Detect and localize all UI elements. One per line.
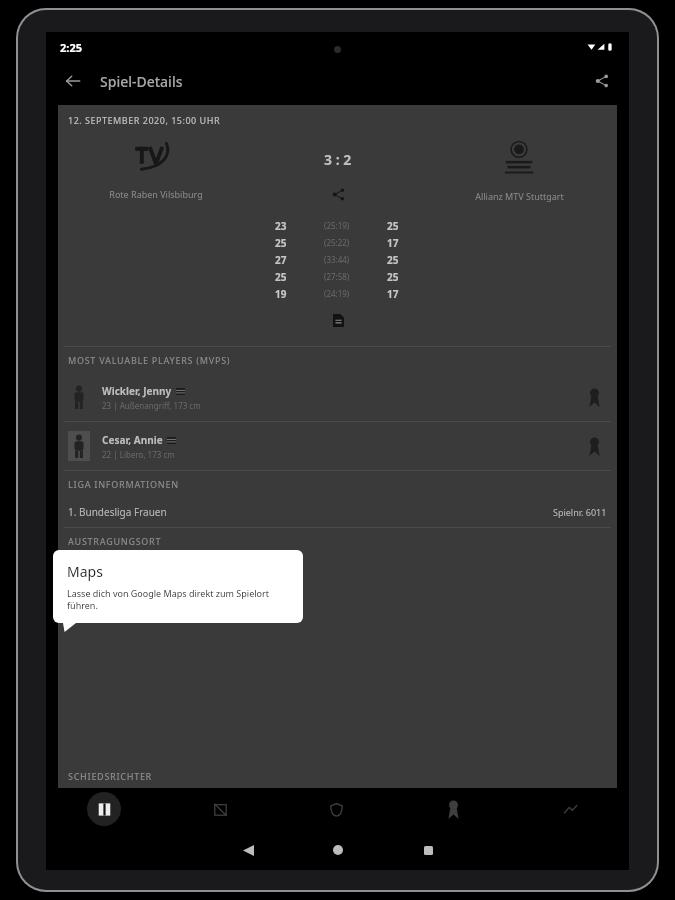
staticText: 25 (387, 219, 399, 233)
staticText: (25:19) (324, 220, 350, 231)
button[interactable]: Mehrzweckhalle Vilsbiburg (58, 554, 617, 594)
staticText: Rote Raben Vilsbiburg (109, 188, 203, 200)
staticText: SCHIEDSRICHTER (68, 770, 153, 782)
button[interactable]: Ranglisten (395, 788, 512, 830)
button[interactable]: Share (585, 64, 619, 98)
button[interactable]: Match report (326, 308, 350, 332)
staticText: 23 (275, 219, 287, 233)
button[interactable]: Home (310, 830, 366, 870)
staticText: 25 (275, 270, 287, 284)
staticText: (27:58) (324, 271, 350, 282)
staticText: AUSTRAGUNGSORT (68, 535, 162, 547)
button[interactable]: Kalender (162, 788, 278, 830)
staticText: 23 | Außenangriff, 173 cm (102, 400, 201, 411)
staticText: 25 (275, 236, 287, 250)
button[interactable]: Maps (53, 550, 303, 623)
button[interactable]: Back (220, 830, 276, 870)
staticText: (25:22) (324, 237, 350, 248)
staticText: Lasse dich von Google Maps direkt zum Sp… (67, 587, 289, 611)
staticText: Wickler, Jenny (102, 384, 172, 398)
button[interactable]: Back (56, 64, 90, 98)
button[interactable]: Spiele (46, 788, 162, 830)
staticText: Spiel-Details (100, 72, 183, 91)
button[interactable]: Wickler, Jenny (58, 373, 617, 421)
button[interactable]: Recents (400, 830, 456, 870)
staticText: Spielnr. 6011 (553, 506, 607, 518)
staticText: 12. SEPTEMBER 2020, 15:00 UHR (68, 114, 221, 126)
staticText: 1. Bundesliga Frauen (68, 505, 167, 519)
button[interactable]: Cesar, Annie (58, 422, 617, 470)
staticText: (24:19) (324, 288, 350, 299)
button[interactable]: Statistik (512, 788, 629, 830)
staticText: Allianz MTV Stuttgart (475, 190, 564, 202)
staticText: MOST VALUABLE PLAYERS (MVPS) (68, 354, 231, 366)
staticText: Cesar, Annie (102, 433, 163, 447)
staticText: LIGA INFORMATIONEN (68, 478, 179, 490)
staticText: 25 (387, 270, 399, 284)
staticText: 17 (387, 236, 399, 250)
staticText: 2:25 (60, 40, 82, 55)
button[interactable]: Teams (278, 788, 395, 830)
button[interactable]: 1. Bundesliga Frauen (58, 497, 617, 527)
staticText: Maps (67, 562, 103, 581)
staticText: 27 (275, 253, 287, 267)
button[interactable]: Share score (325, 181, 351, 207)
staticText: (33:44) (324, 254, 350, 265)
staticText: 3 : 2 (324, 150, 352, 169)
staticText: 17 (387, 287, 399, 301)
staticText: 19 (275, 287, 287, 301)
staticText: 22 | Libero, 173 cm (102, 449, 175, 460)
staticText: 25 (387, 253, 399, 267)
